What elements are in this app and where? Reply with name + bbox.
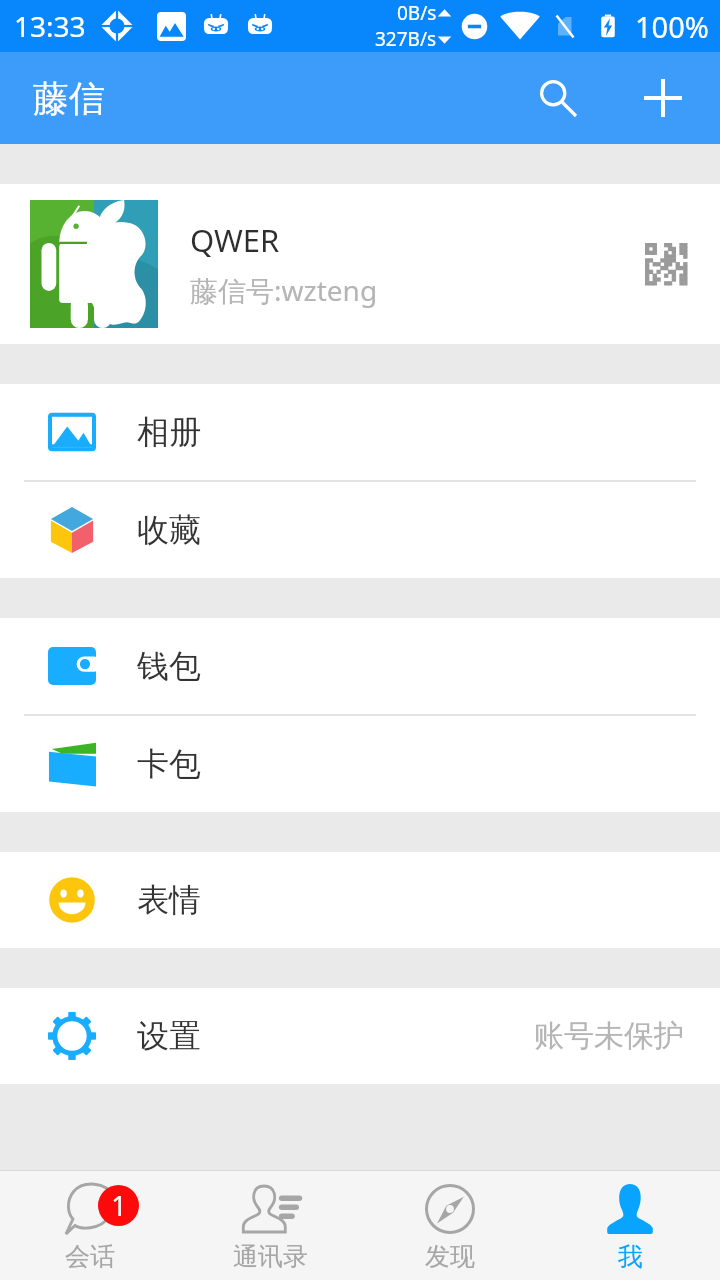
staticText: 藤信 bbox=[33, 76, 105, 121]
staticText: 100% bbox=[635, 7, 709, 46]
staticText: 藤信号:wzteng bbox=[190, 271, 378, 309]
staticText: 账号未保护 bbox=[534, 1017, 684, 1055]
staticText: 0B/s bbox=[397, 0, 437, 26]
staticText: QWER bbox=[190, 219, 280, 261]
button[interactable]: 设置 bbox=[0, 988, 720, 1084]
staticText: 327B/s bbox=[375, 26, 437, 52]
staticText: 卡包 bbox=[137, 744, 201, 784]
staticText: 1 bbox=[111, 1187, 127, 1224]
button[interactable]: 1 bbox=[0, 1171, 180, 1280]
button[interactable]: 表情 bbox=[0, 852, 720, 948]
staticText: 钱包 bbox=[137, 646, 201, 686]
button[interactable]: 发现 bbox=[360, 1171, 540, 1280]
staticText: 设置 bbox=[137, 1016, 201, 1056]
button[interactable]: 我 bbox=[540, 1171, 720, 1280]
staticText: 相册 bbox=[137, 412, 201, 452]
button[interactable]: QR code bbox=[630, 228, 702, 300]
button[interactable]: 通讯录 bbox=[180, 1171, 360, 1280]
button[interactable]: Add bbox=[617, 52, 709, 144]
staticText: 发现 bbox=[425, 1241, 475, 1272]
staticText: 13:33 bbox=[14, 7, 86, 45]
button[interactable]: 卡包 bbox=[0, 716, 720, 812]
button[interactable]: QWER bbox=[0, 184, 720, 344]
staticText: 会话 bbox=[65, 1241, 115, 1272]
staticText: 我 bbox=[618, 1241, 643, 1272]
button[interactable]: Search bbox=[512, 52, 604, 144]
staticText: 表情 bbox=[137, 880, 201, 920]
staticText: 通讯录 bbox=[233, 1241, 308, 1272]
button[interactable]: 收藏 bbox=[0, 482, 720, 578]
button[interactable]: 相册 bbox=[0, 384, 720, 480]
button[interactable]: 钱包 bbox=[0, 618, 720, 714]
staticText: 收藏 bbox=[137, 510, 201, 550]
